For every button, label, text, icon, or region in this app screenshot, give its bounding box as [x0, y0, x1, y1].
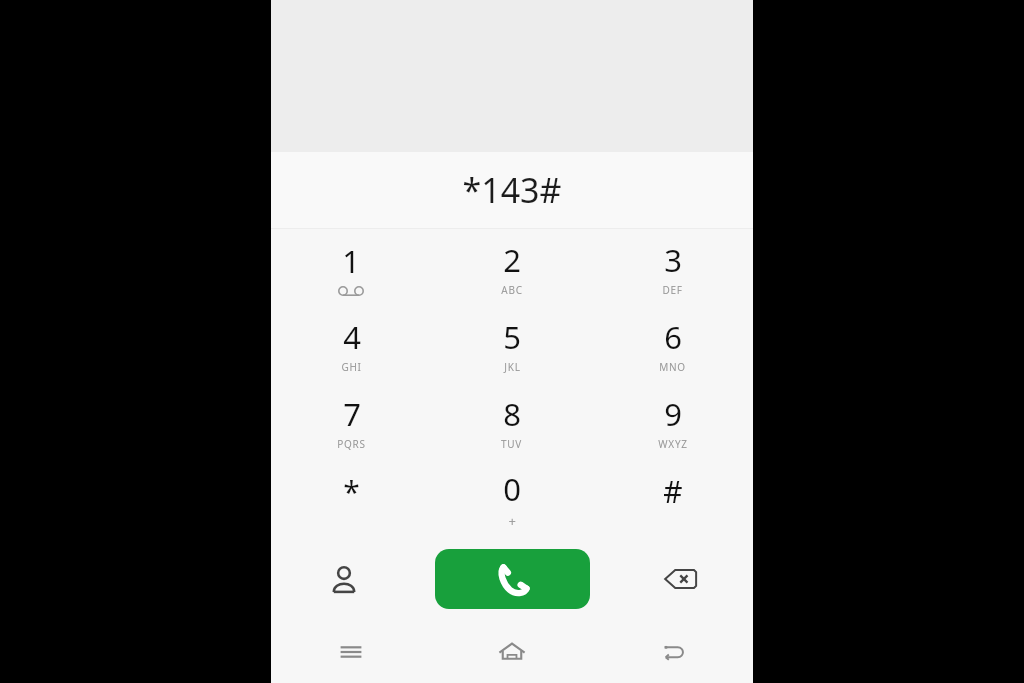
staticText: DEF	[662, 283, 683, 297]
staticText: GHI	[341, 360, 362, 374]
staticText: WXYZ	[658, 437, 688, 451]
staticText: +	[508, 512, 517, 530]
button[interactable]: 9	[592, 383, 753, 460]
button[interactable]: Contacts	[271, 537, 416, 621]
staticText: ABC	[501, 283, 523, 297]
staticText: 7	[343, 393, 361, 435]
button[interactable]: 8	[431, 383, 592, 460]
staticText: 9	[664, 393, 682, 435]
staticText: TUV	[501, 437, 522, 451]
staticText: 8	[503, 393, 521, 435]
staticText: 1	[342, 240, 360, 282]
button[interactable]: *143#	[271, 152, 753, 228]
button[interactable]: 1	[271, 229, 431, 306]
button[interactable]: 0	[431, 460, 592, 537]
staticText: MNO	[659, 360, 686, 374]
button[interactable]: 5	[431, 306, 592, 383]
staticText: *	[343, 471, 360, 512]
button[interactable]: 4	[271, 306, 431, 383]
staticText: 0	[503, 468, 521, 510]
staticText: 4	[343, 316, 361, 358]
staticText: *143#	[462, 167, 562, 213]
button[interactable]: 6	[592, 306, 753, 383]
staticText: 6	[664, 316, 682, 358]
staticText: 5	[503, 316, 521, 358]
button[interactable]: Recent apps	[271, 621, 431, 683]
staticText: PQRS	[337, 437, 366, 451]
button[interactable]: Back	[592, 621, 753, 683]
button[interactable]: 7	[271, 383, 431, 460]
staticText: JKL	[504, 360, 521, 374]
button[interactable]: Delete	[608, 537, 753, 621]
button[interactable]: #	[592, 460, 753, 537]
button[interactable]: Home	[431, 621, 592, 683]
staticText: 2	[503, 239, 521, 281]
button[interactable]: *	[271, 460, 431, 537]
button[interactable]: Call	[435, 549, 590, 609]
button[interactable]: 2	[431, 229, 592, 306]
staticText: #	[663, 471, 683, 512]
staticText: 3	[664, 239, 682, 281]
button[interactable]: 3	[592, 229, 753, 306]
